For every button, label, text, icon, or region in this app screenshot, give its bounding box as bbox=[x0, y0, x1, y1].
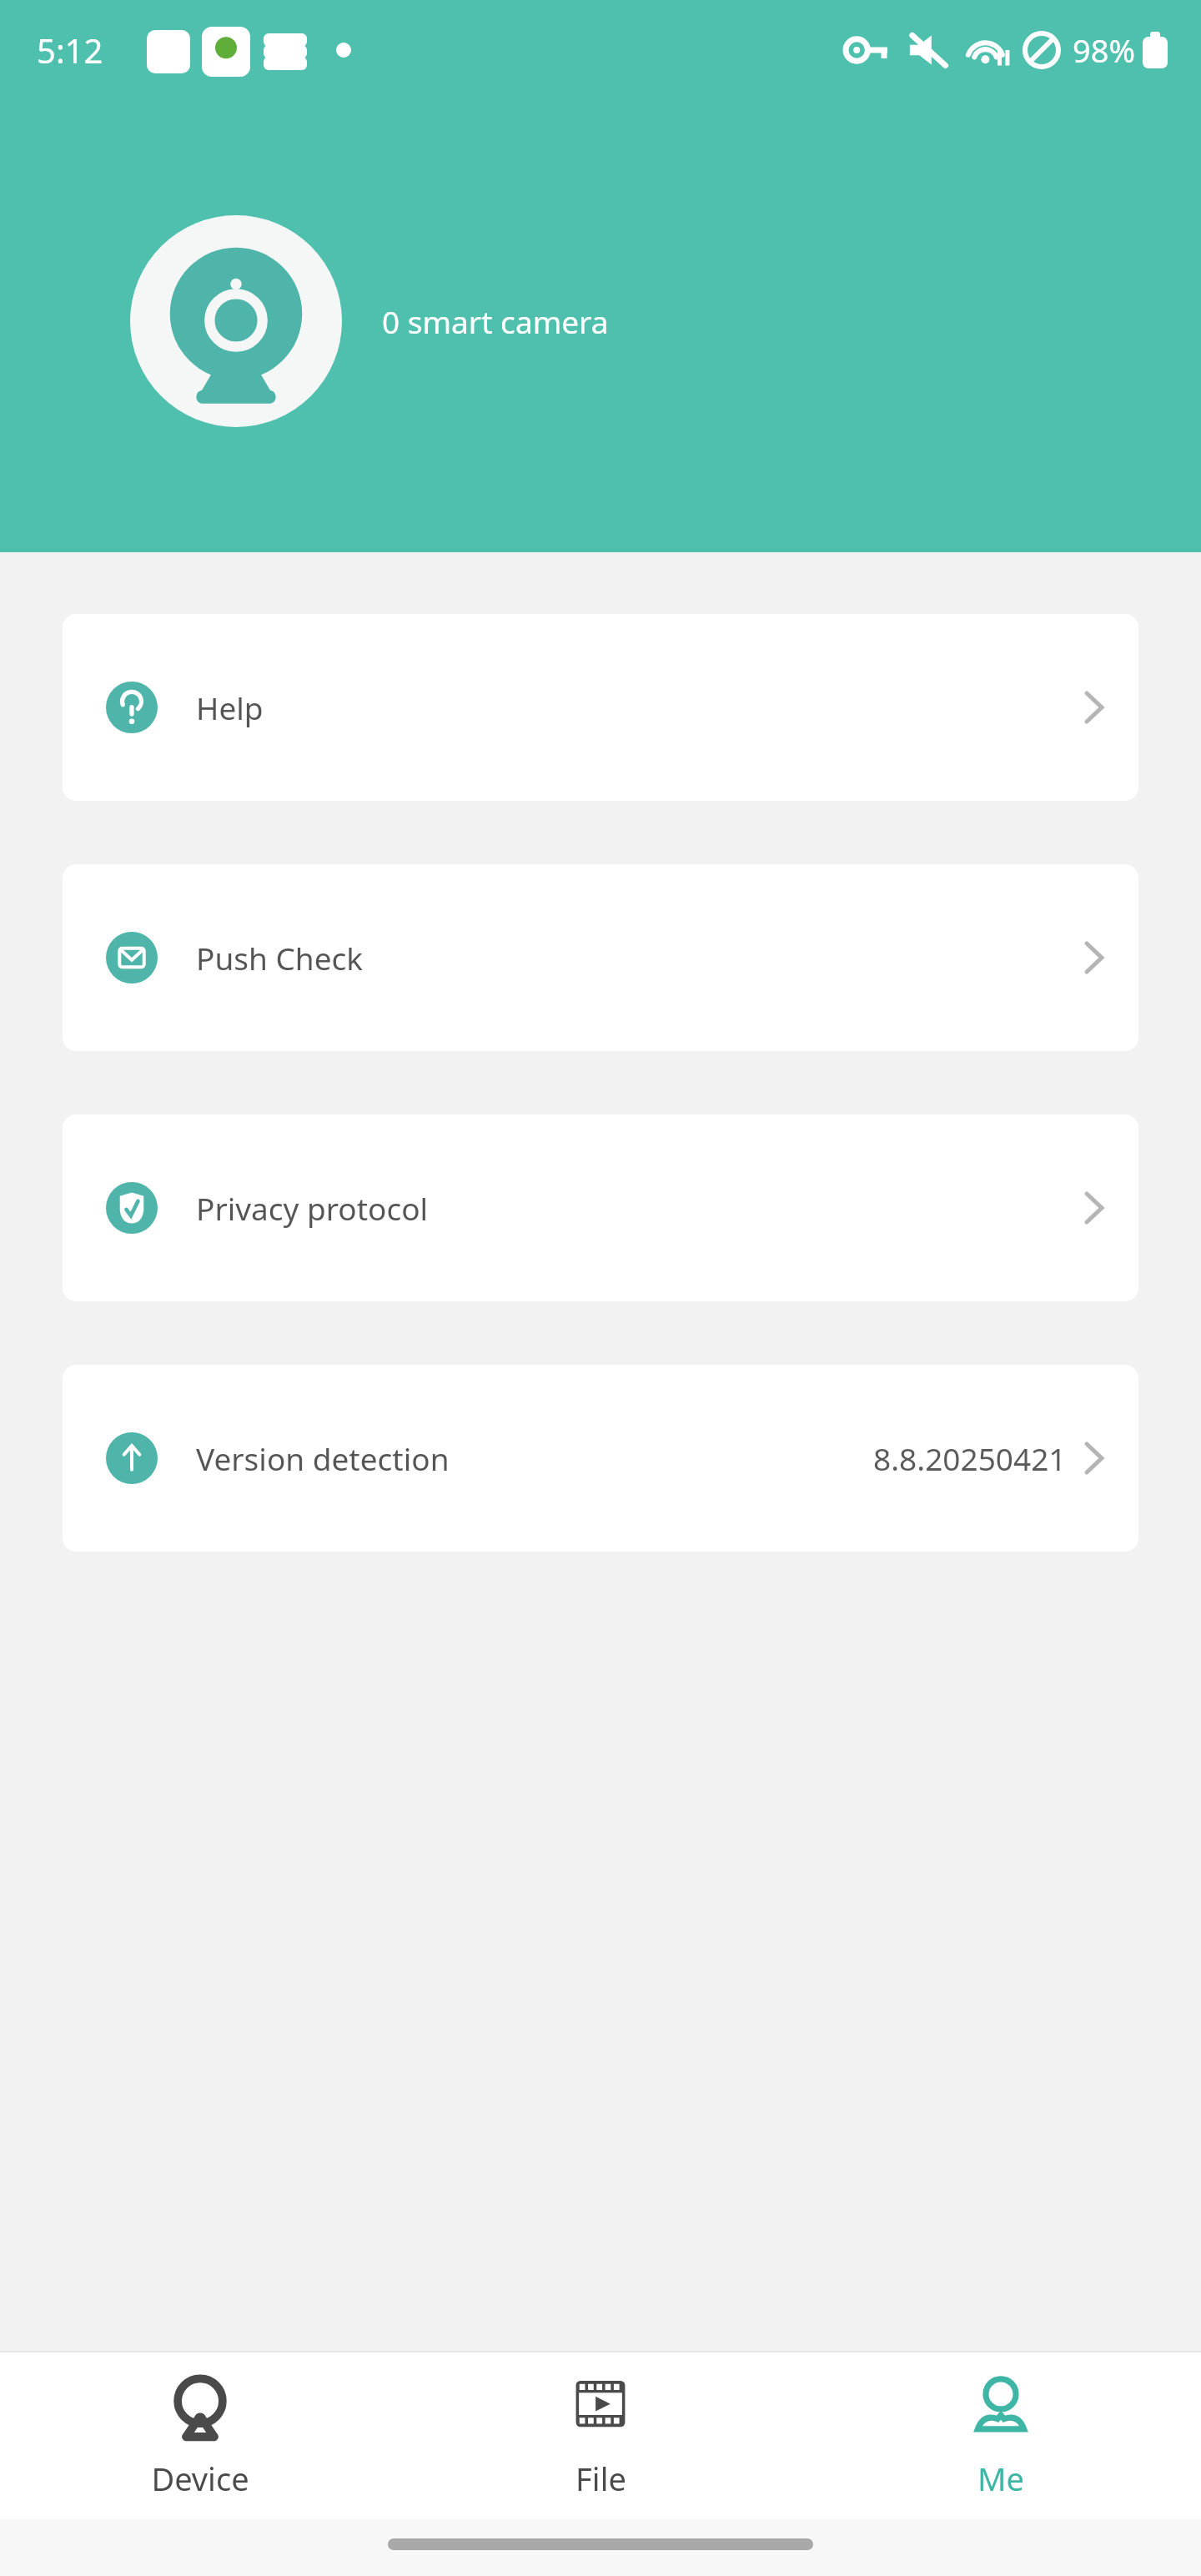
button[interactable]: File bbox=[400, 2352, 801, 2519]
staticText: 5:12 bbox=[37, 28, 103, 73]
staticText: 0 smart camera bbox=[382, 300, 609, 342]
staticText: File bbox=[575, 2457, 626, 2500]
button[interactable]: Push Check bbox=[63, 864, 1138, 1051]
staticText: Privacy protocol bbox=[196, 1187, 429, 1229]
button[interactable]: Me bbox=[801, 2352, 1201, 2519]
staticText: Help bbox=[196, 687, 264, 728]
button[interactable]: Help bbox=[63, 614, 1138, 801]
staticText: Version detection bbox=[196, 1437, 450, 1479]
staticText: 98% bbox=[1073, 28, 1136, 72]
staticText: Device bbox=[151, 2457, 249, 2500]
staticText: 8.8.20250421 bbox=[873, 1437, 1067, 1479]
button[interactable]: Version detection bbox=[63, 1365, 1138, 1552]
button[interactable]: Device bbox=[0, 2352, 400, 2519]
button[interactable] bbox=[130, 215, 342, 427]
staticText: Push Check bbox=[196, 937, 364, 979]
button[interactable]: Privacy protocol bbox=[63, 1114, 1138, 1301]
staticText: Me bbox=[977, 2457, 1024, 2500]
